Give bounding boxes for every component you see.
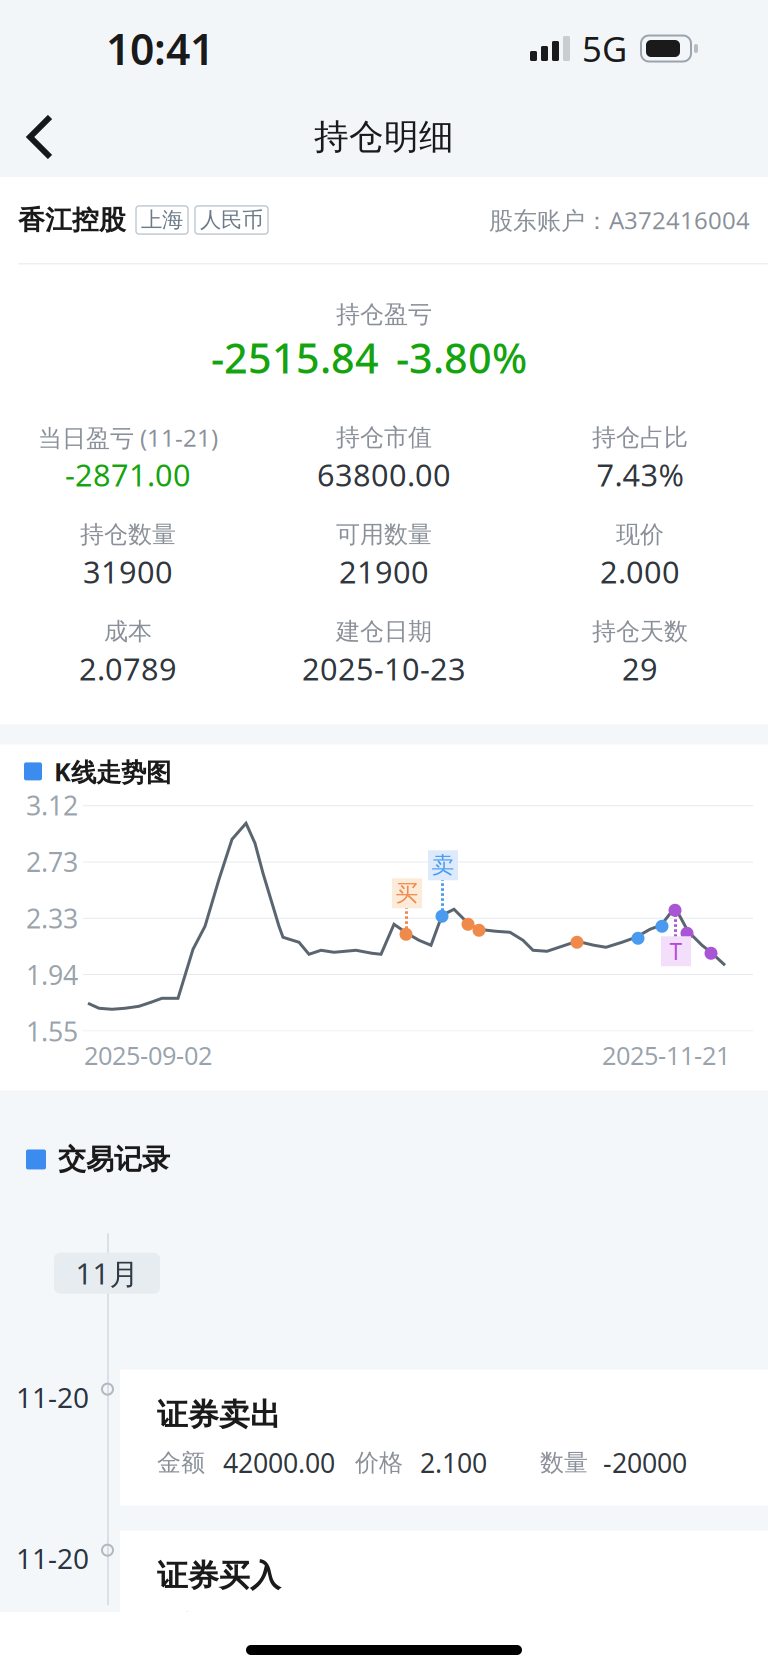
staticText: 21900 [339, 551, 429, 592]
staticText: 人民币 [200, 207, 263, 233]
staticText: 7.43% [596, 454, 683, 495]
staticText: K线走势图 [54, 754, 171, 788]
staticText: 持仓数量 [80, 520, 176, 549]
staticText: 11-20 [16, 1540, 89, 1577]
staticText: 上海 [141, 207, 183, 233]
staticText: 持仓占比 [592, 423, 688, 452]
button[interactable]: Back [12, 101, 84, 173]
staticText: -2515.84 [211, 330, 379, 385]
staticText: 股东账户：A372416004 [489, 204, 750, 236]
staticText: 证券卖出 [157, 1396, 281, 1433]
staticText: 持仓市值 [336, 423, 432, 452]
staticText: 11-20 [16, 1379, 89, 1416]
button[interactable]: 证券买入 [120, 1531, 768, 1667]
staticText: 持仓盈亏 [336, 300, 432, 329]
staticText: 5G [582, 25, 627, 71]
staticText: 63800.00 [317, 454, 451, 495]
staticText: 持仓天数 [592, 617, 688, 646]
staticText: 3.12 [26, 788, 78, 823]
button[interactable]: 证券卖出 [120, 1370, 768, 1506]
staticText: 可用数量 [336, 520, 432, 549]
staticText: 1.94 [26, 957, 78, 992]
staticText: 卖 [431, 851, 454, 879]
staticText: 2.100 [420, 1445, 487, 1480]
staticText: 10:41 [106, 20, 214, 77]
staticText: 2.33 [26, 901, 78, 936]
staticText: 1.55 [26, 1014, 78, 1049]
staticText: 买 [395, 879, 418, 907]
staticText: 数量 [540, 1448, 588, 1477]
staticText: 当日盈亏 (11-21) [38, 422, 218, 453]
staticText: 2025-09-02 [84, 1038, 212, 1072]
staticText: 交易记录 [58, 1142, 170, 1177]
staticText: -2871.00 [65, 454, 191, 495]
staticText: 11月 [75, 1254, 138, 1293]
staticText: 持仓明细 [314, 116, 454, 158]
staticText: 证券买入 [157, 1557, 281, 1594]
staticText: 2025-11-21 [602, 1038, 730, 1072]
staticText: 31900 [83, 551, 173, 592]
staticText: 29 [622, 648, 658, 689]
staticText: 金额 [157, 1448, 205, 1477]
staticText: 2.000 [600, 551, 680, 592]
staticText: 2.0789 [79, 648, 177, 689]
staticText: 建仓日期 [336, 617, 432, 646]
staticText: T [669, 936, 682, 966]
staticText: 2.73 [26, 844, 78, 879]
staticText: -20000 [603, 1445, 687, 1480]
staticText: 42000.00 [223, 1445, 335, 1480]
staticText: -3.80% [396, 330, 527, 385]
staticText: 价格 [355, 1448, 403, 1477]
staticText: 2025-10-23 [302, 648, 466, 689]
staticText: 成本 [104, 617, 152, 646]
staticText: 香江控股 [18, 204, 126, 236]
staticText: 现价 [616, 520, 664, 549]
